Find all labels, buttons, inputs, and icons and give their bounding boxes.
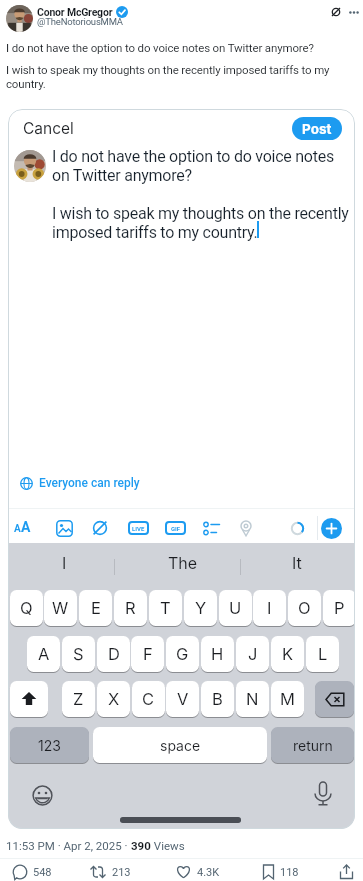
button[interactable]: 213 [89,864,131,880]
staticText: 4.3K [197,866,220,879]
button[interactable]: T [149,590,182,626]
button[interactable] [315,681,354,717]
staticText: G [176,644,189,664]
button[interactable]: 4.3K [175,864,220,880]
button[interactable]: U [219,590,252,626]
staticText: C [142,689,155,709]
staticText: 11:53 PM · Apr 2, 2025 · [6,839,131,852]
staticText: P [334,598,345,618]
staticText: D [108,644,120,664]
button[interactable] [6,5,33,32]
staticText: M [280,689,295,709]
button[interactable]: L [306,636,339,672]
button[interactable]: G [166,636,199,672]
button[interactable]: 548 [12,864,52,880]
button[interactable]: K [271,636,304,672]
staticText: S [73,644,84,664]
staticText: GIF [171,525,181,532]
staticText: return [293,737,333,754]
button[interactable]: C [132,681,165,717]
staticText: 548 [33,866,52,879]
staticText: E [91,598,101,618]
staticText: Z [73,689,84,709]
staticText: I do not have the option to do voice not… [6,41,314,54]
staticText: Q [20,598,33,618]
staticText: R [125,598,136,618]
button[interactable]: Everyone can reply [20,476,140,490]
staticText: A [21,519,31,535]
staticText: I wish to speak my thoughts on the recen… [6,63,330,91]
button[interactable]: A [27,636,60,672]
staticText: Conor McGregor [37,6,113,18]
button[interactable]: Q [10,590,43,626]
button[interactable]: Conor McGregor [37,6,128,18]
staticText: 118 [280,866,299,879]
button[interactable]: Z [62,681,95,717]
staticText: L [318,644,328,664]
staticText: H [211,644,224,664]
staticText: F [143,644,153,664]
staticText: A [38,644,50,664]
staticText: W [52,598,69,618]
button[interactable]: A [14,519,31,535]
staticText: space [160,737,201,754]
button[interactable]: F [131,636,164,672]
button[interactable]: LIVE [128,521,149,535]
button[interactable]: H [201,636,234,672]
staticText: I [267,598,272,618]
staticText: B [212,689,223,709]
button[interactable]: J [236,636,269,672]
staticText: @TheNotoriousMMA [37,16,123,27]
button[interactable]: W [44,590,77,626]
staticText: 213 [112,866,131,879]
button[interactable]: 118 [262,864,299,880]
button[interactable]: O [288,590,321,626]
button[interactable]: Post [292,117,342,140]
staticText: X [108,689,120,709]
staticText: The [168,553,198,572]
staticText: V [177,689,189,709]
staticText: Post [302,121,332,137]
staticText: N [246,689,259,709]
button[interactable]: GIF [165,521,186,535]
staticText: LIVE [132,525,145,532]
button[interactable]: space [93,727,267,763]
staticText: It [292,553,302,572]
staticText: T [160,598,171,618]
button[interactable] [14,150,46,182]
button[interactable] [56,520,73,537]
button[interactable]: N [236,681,269,717]
button[interactable]: R [114,590,147,626]
button[interactable]: B [201,681,234,717]
staticText: Cancel [23,119,74,138]
staticText: Everyone can reply [39,476,140,490]
button[interactable]: M [271,681,304,717]
button[interactable]: Y [184,590,217,626]
staticText: O [298,598,311,618]
button[interactable]: V [166,681,199,717]
staticText: U [229,598,242,618]
staticText: Views [151,839,185,852]
staticText: I do not have the option to do voice not… [52,147,349,242]
staticText: 390 [131,839,151,852]
staticText: 123 [38,737,61,754]
staticText: I [62,553,67,572]
button[interactable] [349,11,359,14]
staticText: Y [195,598,207,618]
button[interactable] [32,785,53,806]
button[interactable] [321,518,342,539]
button[interactable]: X [97,681,130,717]
button[interactable]: return [271,727,354,763]
button[interactable]: S [62,636,95,672]
button[interactable] [339,864,354,880]
button[interactable]: I [253,590,286,626]
button[interactable] [203,520,220,537]
button[interactable]: E [79,590,112,626]
button[interactable] [10,681,48,717]
staticText: J [248,644,258,664]
button[interactable] [313,781,332,807]
button[interactable]: 123 [10,727,89,763]
button[interactable]: D [97,636,130,672]
button[interactable]: P [323,590,355,626]
staticText: A [14,523,21,535]
